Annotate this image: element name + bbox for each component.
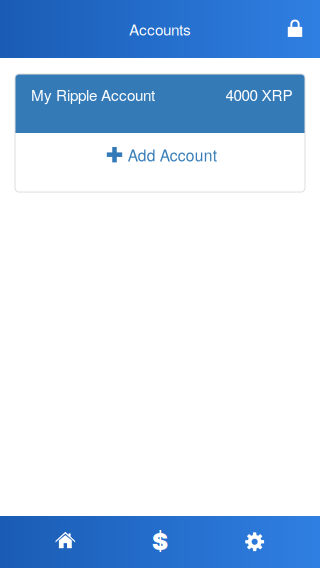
staticText: My Ripple Account (31, 83, 155, 105)
button[interactable]: Settings (207, 516, 302, 568)
staticText: $ (152, 527, 168, 556)
button[interactable]: My Ripple Account (15, 74, 305, 133)
staticText: Add Account (128, 143, 217, 166)
button[interactable]: Home (18, 516, 113, 568)
staticText: 4000 XRP (225, 83, 292, 105)
button[interactable]: Lock (279, 12, 311, 46)
staticText: Accounts (129, 18, 191, 40)
button[interactable]: Payments (113, 516, 207, 568)
button[interactable]: Add Account (15, 133, 305, 192)
